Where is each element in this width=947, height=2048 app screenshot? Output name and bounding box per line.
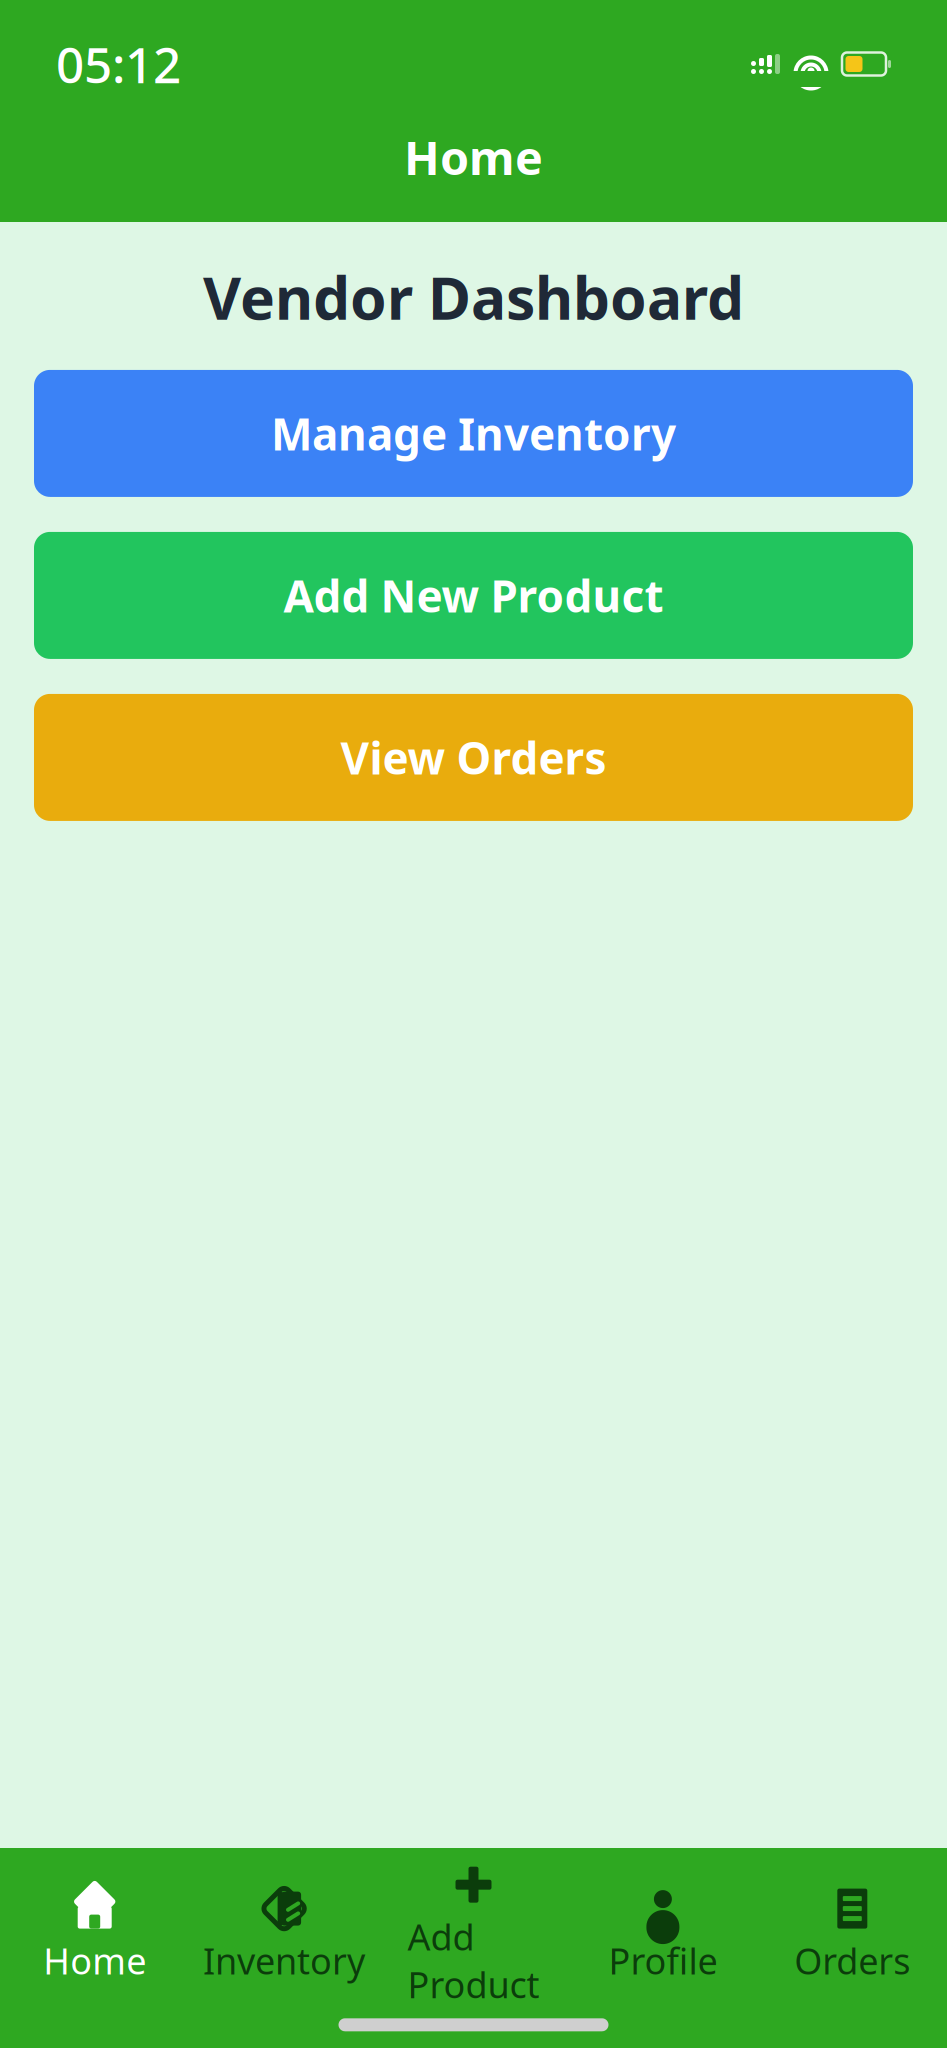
staticText: View Orders <box>340 728 606 787</box>
staticText: Home <box>404 126 543 188</box>
button[interactable]: Home <box>0 1866 189 1994</box>
button[interactable]: Inventory <box>189 1866 379 1994</box>
staticText: Add New Product <box>283 566 663 625</box>
staticText: Orders <box>794 1937 910 1984</box>
staticText: Vendor Dashboard <box>203 258 744 336</box>
staticText: Profile <box>608 1937 717 1984</box>
staticText: Manage Inventory <box>271 404 676 463</box>
button[interactable]: Orders <box>758 1866 947 1994</box>
button[interactable]: Profile <box>568 1866 758 1994</box>
button[interactable]: Add New Product <box>34 532 913 659</box>
button[interactable]: Manage Inventory <box>34 370 913 497</box>
staticText: Home <box>43 1937 146 1984</box>
staticText: 05:12 <box>56 31 181 97</box>
staticText: Inventory <box>203 1937 365 1984</box>
button[interactable]: Add Product <box>379 1842 568 2018</box>
button[interactable]: View Orders <box>34 694 913 821</box>
staticText: Add Product <box>407 1913 539 2008</box>
